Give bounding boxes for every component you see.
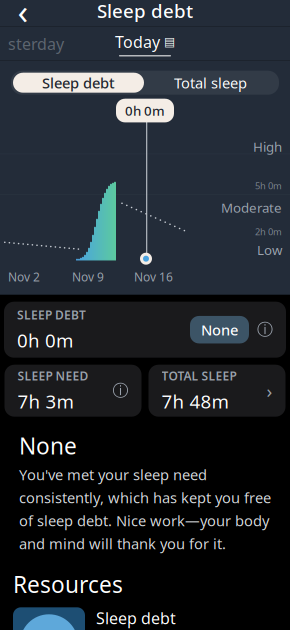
button[interactable]: Sleep debt (13, 73, 144, 93)
staticText: Low (257, 241, 282, 259)
staticText: Sleep debt (97, 0, 193, 23)
staticText: Sleep debt (42, 73, 115, 92)
button[interactable]: Sleep debt (13, 607, 277, 630)
staticText: Today (115, 31, 160, 52)
staticText: ⓘ (112, 381, 128, 401)
button[interactable]: Total sleep (144, 73, 277, 93)
staticText: None (19, 431, 77, 461)
staticText: 0h 0m (17, 328, 73, 353)
staticText: ‹ (17, 0, 28, 34)
staticText: Nov 9 (72, 269, 104, 285)
staticText: 5h 0m (255, 179, 282, 192)
staticText: › (266, 378, 272, 403)
staticText: 2h 0m (255, 225, 282, 238)
button[interactable]: Today (115, 31, 175, 52)
staticText: sterday (8, 33, 64, 54)
button[interactable]: TOTAL SLEEP (148, 365, 285, 417)
staticText: Nov 2 (8, 269, 40, 285)
staticText: ⓘ (257, 320, 273, 340)
staticText: Moderate (221, 199, 282, 216)
staticText: TOTAL SLEEP (161, 368, 236, 384)
button[interactable]: Back (6, 0, 40, 28)
staticText: ▤ (164, 35, 175, 48)
staticText: 7h 48m (161, 389, 228, 414)
staticText: SLEEP NEED (17, 368, 88, 384)
staticText: High (253, 138, 282, 155)
button[interactable]: SLEEP DEBT (4, 302, 286, 358)
button[interactable]: SLEEP NEED (4, 365, 141, 417)
staticText: SLEEP DEBT (17, 307, 86, 323)
staticText: 0h 0m (125, 102, 165, 119)
button[interactable]: sterday (8, 33, 72, 54)
staticText: You've met your sleep need consistently,… (19, 465, 271, 553)
staticText: 7h 3m (17, 389, 73, 414)
staticText: Sleep debt (96, 607, 176, 628)
staticText: Nov 16 (134, 269, 173, 285)
staticText: Resources (13, 569, 123, 599)
staticText: None (201, 320, 238, 339)
staticText: Total sleep (174, 73, 247, 92)
